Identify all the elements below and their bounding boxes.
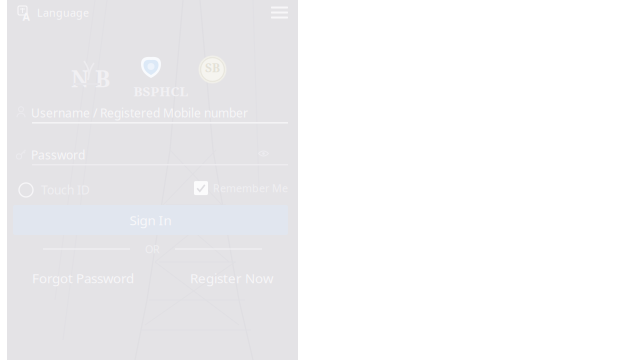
staticText: SB xyxy=(205,59,220,76)
button[interactable]: A xyxy=(7,2,89,23)
staticText: Sign In xyxy=(129,211,171,229)
button[interactable]: Touch ID xyxy=(19,180,90,200)
button[interactable]: Menu xyxy=(271,3,298,21)
staticText: Language xyxy=(37,5,89,20)
button[interactable]: Forgot Password xyxy=(32,269,134,287)
staticText: Remember Me xyxy=(213,181,288,195)
staticText: OR xyxy=(145,242,160,256)
staticText: Username / Registered Mobile number xyxy=(31,105,248,121)
staticText: Password xyxy=(31,147,85,163)
staticText: Forgot Password xyxy=(32,269,134,287)
staticText: Register Now xyxy=(190,269,273,287)
button[interactable]: Remember Me xyxy=(194,179,288,197)
staticText: A xyxy=(22,9,29,24)
staticText: Touch ID xyxy=(41,182,90,198)
button[interactable]: Register Now xyxy=(190,269,273,287)
staticText: BSPHCL xyxy=(133,82,188,100)
staticText: N B xyxy=(71,63,110,94)
